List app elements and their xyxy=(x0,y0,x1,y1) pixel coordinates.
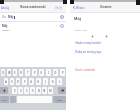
staticText: M xyxy=(49,89,52,93)
staticText: G xyxy=(30,80,33,84)
staticText: D xyxy=(17,80,20,84)
button[interactable]: D xyxy=(16,78,20,85)
button[interactable]: V xyxy=(30,87,35,94)
staticText: W xyxy=(8,71,11,75)
button[interactable]: Informacje xyxy=(60,24,64,28)
button[interactable]: Z xyxy=(12,87,17,94)
staticText: C xyxy=(26,89,28,93)
button[interactable]: Dodaj do istniejącego xyxy=(70,47,140,56)
button[interactable]: B xyxy=(36,87,41,94)
button[interactable]: Mój xyxy=(0,22,66,32)
button[interactable]: X xyxy=(18,87,23,94)
staticText: Q xyxy=(2,71,5,75)
button[interactable]: Wiadomość xyxy=(91,35,94,38)
button[interactable]: Telefon xyxy=(105,35,108,38)
button[interactable]: A xyxy=(4,78,8,85)
staticText: X xyxy=(20,89,22,93)
button[interactable]: R xyxy=(19,69,23,76)
button[interactable]: U xyxy=(39,69,44,76)
staticText: Utwórz nowy kontakt xyxy=(75,41,101,45)
staticText: T xyxy=(27,71,29,75)
button[interactable]: G xyxy=(29,78,34,85)
button[interactable]: Anuluj xyxy=(0,5,11,10)
button[interactable]: K xyxy=(50,78,55,85)
button[interactable]: Wyślij xyxy=(53,5,64,10)
staticText: H xyxy=(37,80,40,84)
staticText: J xyxy=(45,80,46,84)
staticText: Mój xyxy=(2,24,8,28)
button[interactable]: Q xyxy=(1,69,5,76)
button[interactable]: S xyxy=(10,78,14,85)
staticText: L xyxy=(59,80,61,84)
staticText: Wyślij xyxy=(55,6,63,10)
staticText: Z xyxy=(14,89,16,93)
staticText: dzisiaj 12:04 xyxy=(75,29,87,32)
staticText: I xyxy=(48,71,50,75)
button[interactable]: M xyxy=(48,87,53,94)
staticText: E xyxy=(14,71,16,75)
button[interactable]: T xyxy=(25,69,30,76)
staticText: B xyxy=(38,89,40,93)
staticText: wróć xyxy=(57,98,63,101)
button[interactable]: J xyxy=(43,78,48,85)
button[interactable]: W xyxy=(7,69,11,76)
staticText: U xyxy=(40,71,43,75)
button[interactable]: Wstecz xyxy=(73,5,85,10)
staticText: Mój xyxy=(8,15,14,19)
staticText: Wstecz xyxy=(76,6,85,10)
staticText: K xyxy=(52,80,54,84)
staticText: V xyxy=(32,89,34,93)
staticText: Mój xyxy=(74,16,81,21)
staticText: Nowa wiadomość xyxy=(20,5,46,9)
button[interactable]: Do: xyxy=(0,13,66,21)
staticText: A xyxy=(5,80,7,84)
button[interactable]: O xyxy=(53,69,58,76)
button[interactable]: E xyxy=(13,69,17,76)
button[interactable]: C xyxy=(24,87,29,94)
staticText: telefon xyxy=(2,29,10,32)
staticText: F xyxy=(24,80,26,84)
button[interactable]: P xyxy=(60,69,65,76)
button[interactable]: Backspace xyxy=(58,87,66,94)
staticText: P xyxy=(62,71,64,75)
button[interactable]: Shift xyxy=(0,87,8,94)
staticText: Ostatnie xyxy=(100,5,112,9)
staticText: 123 xyxy=(2,98,7,101)
staticText: Do: xyxy=(2,15,7,19)
staticText: Usuń z ostatnich xyxy=(75,68,96,72)
button[interactable]: I xyxy=(46,69,51,76)
button[interactable]: Dodaj kontakt xyxy=(60,15,64,19)
staticText: S xyxy=(11,80,13,84)
staticText: Dodaj do istniejącego xyxy=(75,50,102,54)
button[interactable]: N xyxy=(42,87,47,94)
staticText: O xyxy=(54,71,57,75)
button[interactable]: Utwórz nowy kontakt xyxy=(70,38,140,47)
button[interactable]: L xyxy=(57,78,62,85)
staticText: Anuluj xyxy=(1,6,10,10)
button[interactable]: Y xyxy=(32,69,37,76)
button[interactable]: F xyxy=(22,78,27,85)
button[interactable]: H xyxy=(36,78,41,85)
staticText: N xyxy=(43,89,46,93)
button[interactable]: wróć xyxy=(53,96,66,103)
staticText: Y xyxy=(34,71,36,75)
staticText: R xyxy=(20,71,22,75)
button[interactable]: 123 xyxy=(0,96,9,103)
button[interactable]: Usuń z ostatnich xyxy=(70,65,140,74)
